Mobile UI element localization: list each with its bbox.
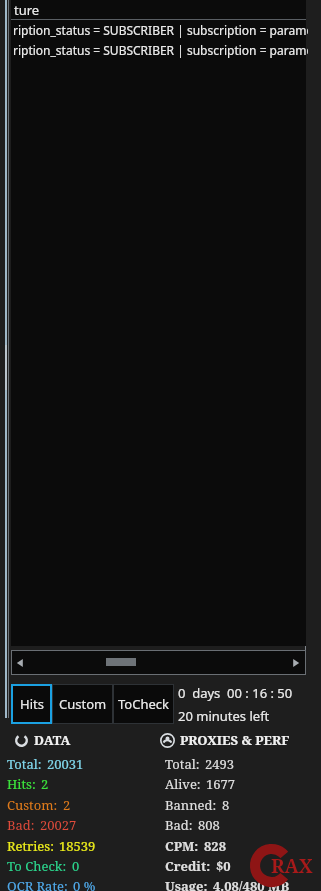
staticText: 828 bbox=[204, 837, 227, 855]
staticText: Retries: bbox=[7, 837, 54, 855]
staticText: $0 bbox=[216, 857, 231, 875]
staticText: Banned: bbox=[165, 796, 217, 814]
staticText: Bad: bbox=[7, 816, 35, 834]
button[interactable]: Custom bbox=[52, 684, 113, 724]
staticText: CPM: bbox=[165, 837, 199, 855]
staticText: Hits bbox=[20, 695, 44, 713]
staticText: RAX bbox=[271, 853, 313, 879]
button[interactable]: Hits bbox=[11, 684, 52, 724]
staticText: Hits: bbox=[7, 775, 36, 793]
staticText: ToCheck bbox=[118, 695, 169, 713]
button[interactable]: Scroll left bbox=[12, 651, 28, 674]
button[interactable]: Scroll right bbox=[288, 651, 304, 674]
staticText: To Check: bbox=[7, 857, 67, 875]
staticText: 0 % bbox=[73, 877, 96, 891]
staticText: Bad: bbox=[165, 816, 193, 834]
staticText: 20031 bbox=[47, 755, 84, 773]
staticText: 2 bbox=[41, 775, 49, 793]
staticText: 2493 bbox=[205, 755, 235, 773]
staticText: ture bbox=[14, 1, 40, 19]
button[interactable]: ToCheck bbox=[113, 684, 174, 724]
staticText: 808 bbox=[198, 816, 220, 834]
staticText: Custom bbox=[59, 695, 107, 713]
staticText: OCR Rate: bbox=[7, 877, 68, 891]
staticText: Total: bbox=[165, 755, 200, 773]
staticText: 20027 bbox=[40, 816, 77, 834]
staticText: Custom: bbox=[7, 796, 58, 814]
staticText: Credit: bbox=[165, 857, 211, 875]
staticText: 20 minutes left bbox=[178, 707, 270, 725]
staticText: 0 bbox=[72, 857, 80, 875]
staticText: PROXIES & PERF bbox=[180, 731, 290, 749]
staticText: DATA bbox=[34, 731, 71, 749]
staticText: 8 bbox=[222, 796, 230, 814]
staticText: 18539 bbox=[59, 837, 96, 855]
staticText: 1677 bbox=[206, 775, 236, 793]
staticText: ription_status = SUBSCRIBER | subscripti… bbox=[13, 42, 308, 58]
staticText: 4.08/480 MB bbox=[213, 877, 290, 891]
staticText: Usage: bbox=[165, 877, 208, 891]
staticText: ription_status = SUBSCRIBER | subscripti… bbox=[13, 22, 308, 38]
staticText: Alive: bbox=[165, 775, 201, 793]
staticText: 0 days 00 : 16 : 50 bbox=[178, 684, 293, 702]
staticText: 2 bbox=[63, 796, 71, 814]
staticText: Total: bbox=[7, 755, 42, 773]
